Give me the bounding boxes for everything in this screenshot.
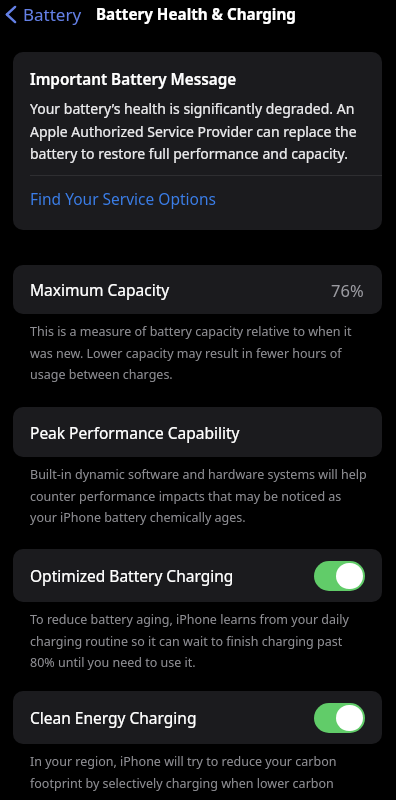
staticText: To reduce battery aging, iPhone learns f… xyxy=(30,611,369,670)
staticText: Optimized Battery Charging xyxy=(30,565,234,586)
button[interactable]: Clean Energy Charging switch, on xyxy=(314,703,365,733)
staticText: This is a measure of battery capacity re… xyxy=(30,323,369,382)
staticText: Find Your Service Options xyxy=(30,188,216,209)
staticText: Important Battery Message xyxy=(30,69,237,90)
staticText: 76% xyxy=(331,279,364,301)
staticText: Battery Health & Charging xyxy=(96,4,296,25)
staticText: Your battery’s health is significantly d… xyxy=(30,99,364,163)
button[interactable]: Find Your Service Options xyxy=(13,176,382,230)
staticText: Maximum Capacity xyxy=(30,279,170,300)
staticText: Built-in dynamic software and hardware s… xyxy=(30,466,369,525)
button[interactable]: Optimized Battery Charging switch, on xyxy=(314,561,365,591)
button[interactable]: Back to Battery xyxy=(0,0,88,29)
button[interactable]: Peak Performance Capability xyxy=(13,407,382,457)
staticText: Clean Energy Charging xyxy=(30,707,197,728)
staticText: Peak Performance Capability xyxy=(30,422,240,443)
button[interactable]: Maximum Capacity xyxy=(13,265,382,314)
button[interactable]: Clean Energy Charging xyxy=(13,691,382,744)
staticText: In your region, iPhone will try to reduc… xyxy=(30,753,369,791)
button[interactable]: Optimized Battery Charging xyxy=(13,549,382,602)
staticText: Battery xyxy=(23,3,82,26)
